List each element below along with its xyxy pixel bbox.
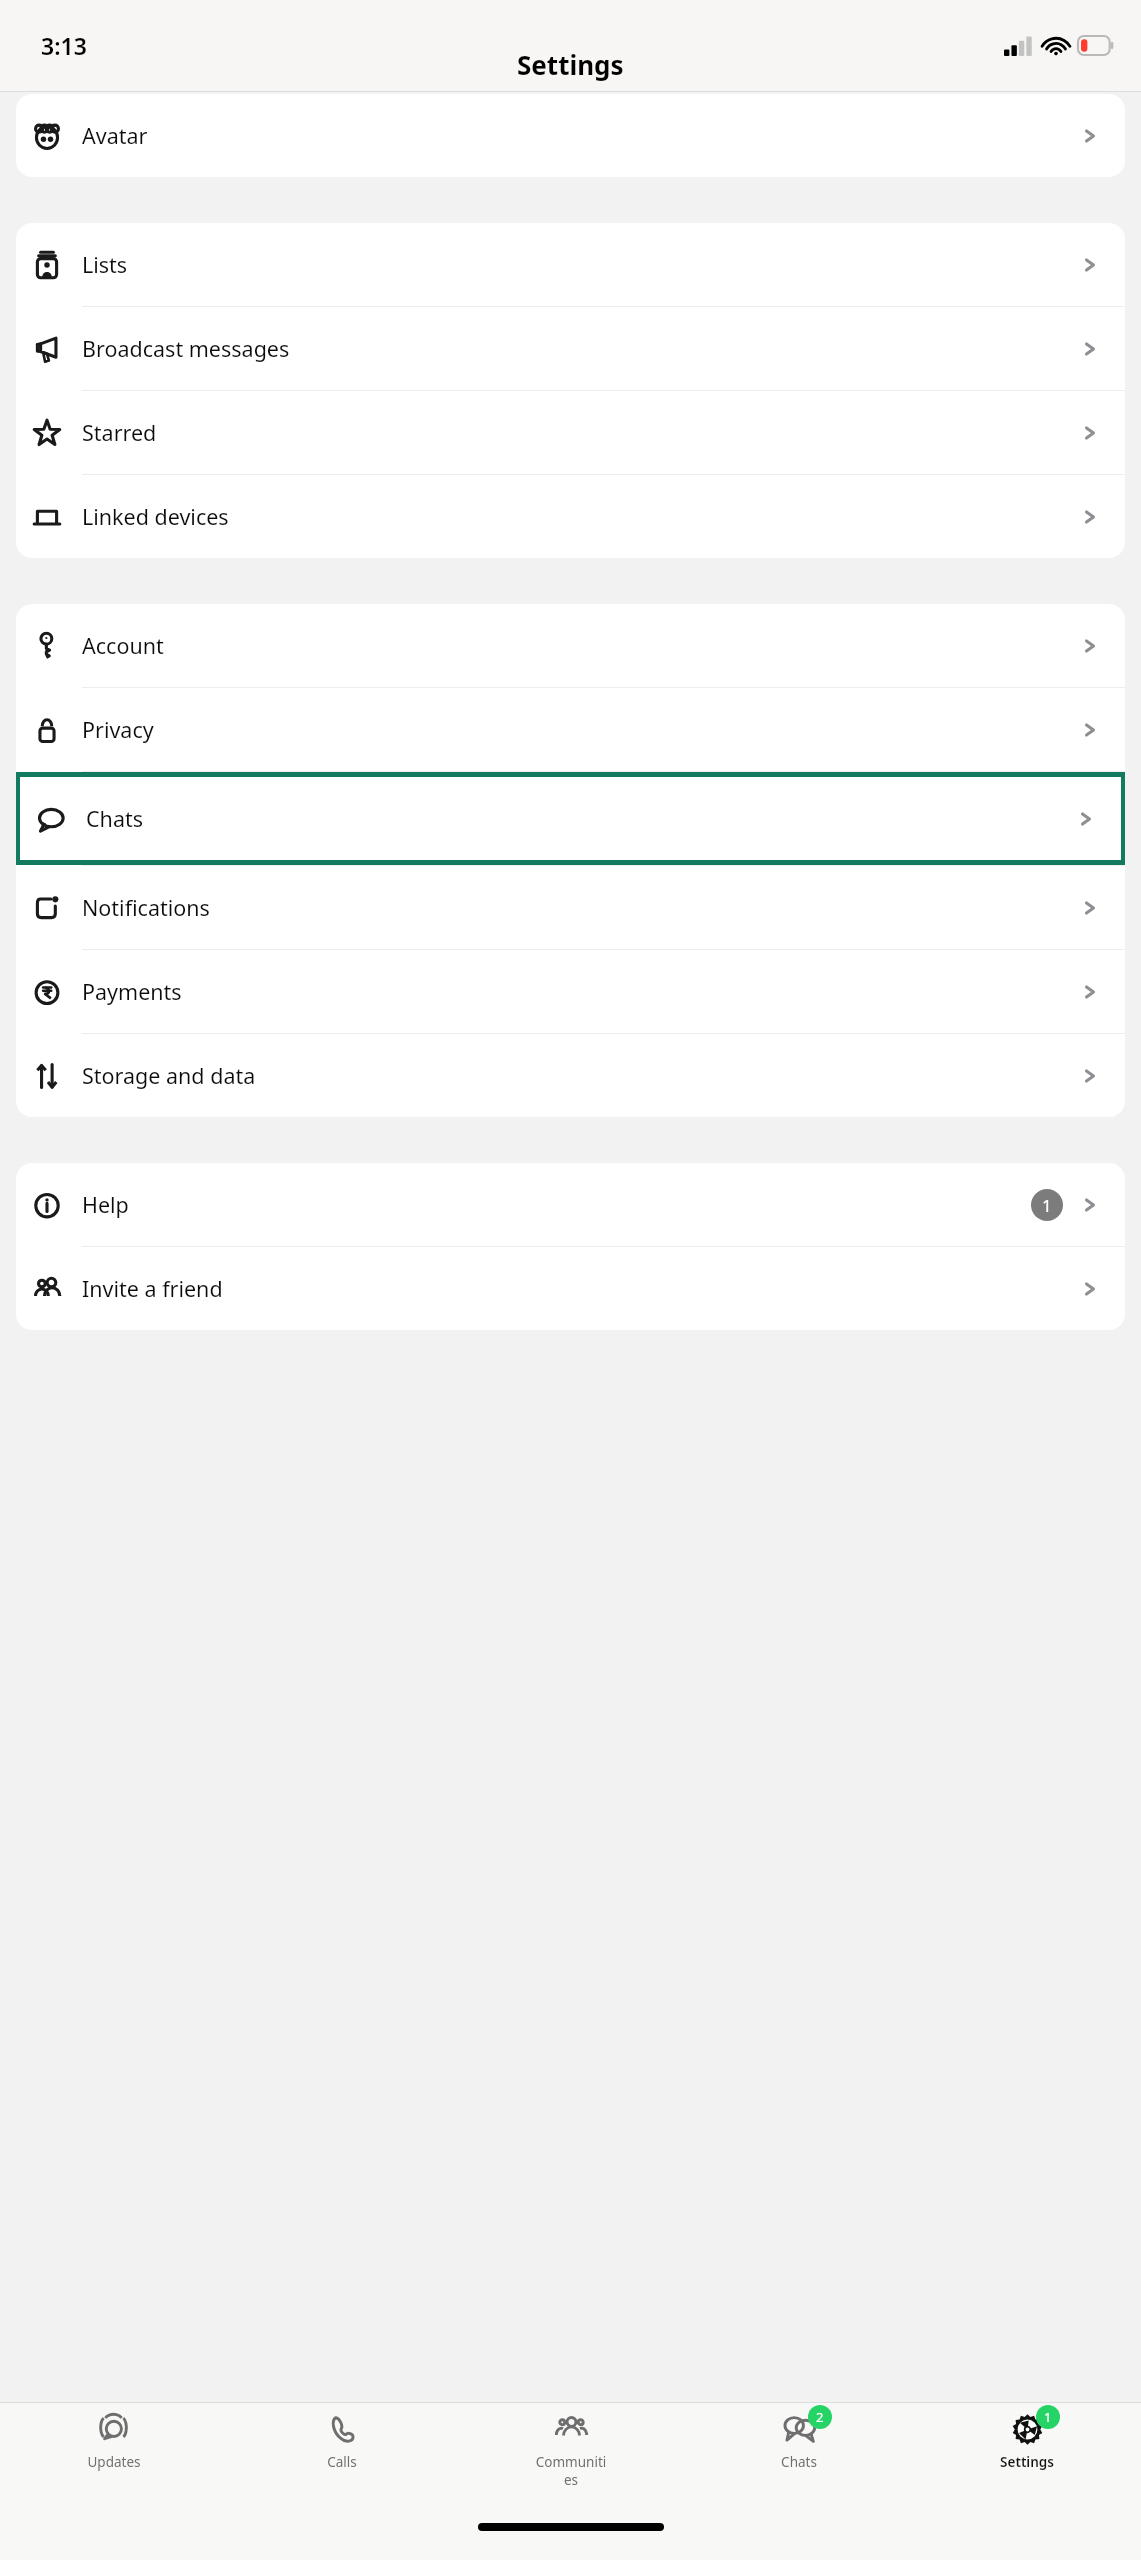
button[interactable]: Settings <box>989 2410 1065 2471</box>
staticText: Payments <box>82 977 182 1006</box>
staticText: Settings <box>517 47 624 82</box>
staticText: Account <box>82 631 164 660</box>
staticText: Avatar <box>82 121 148 150</box>
staticText: 3:13 <box>41 30 87 61</box>
staticText: Privacy <box>82 715 154 744</box>
staticText: Settings <box>1000 2453 1054 2471</box>
button[interactable]: Invite a friend <box>16 1247 1125 1330</box>
button[interactable]: Chats <box>761 2410 837 2471</box>
staticText: Broadcast messages <box>82 334 290 363</box>
staticText: Help <box>82 1190 129 1219</box>
staticText: Notifications <box>82 893 210 922</box>
button[interactable]: Updates <box>76 2410 152 2471</box>
staticText: Starred <box>82 418 157 447</box>
staticText: 2 <box>816 2408 824 2426</box>
staticText: Chats <box>86 804 143 833</box>
button[interactable]: Communities <box>533 2410 609 2489</box>
button[interactable]: Privacy <box>16 688 1125 771</box>
button[interactable]: Help <box>16 1163 1125 1246</box>
button[interactable]: Notifications <box>16 866 1125 949</box>
staticText: 1 <box>1042 1194 1052 1217</box>
button[interactable]: Account <box>16 604 1125 687</box>
staticText: 1 <box>1044 2408 1052 2426</box>
staticText: Storage and data <box>82 1061 256 1090</box>
staticText: Lists <box>82 250 128 279</box>
staticText: Invite a friend <box>82 1274 223 1303</box>
button[interactable]: Payments <box>16 950 1125 1033</box>
button[interactable]: Storage and data <box>16 1034 1125 1117</box>
button[interactable]: Calls <box>304 2410 380 2471</box>
staticText: Communities <box>533 2453 609 2489</box>
button[interactable]: Avatar <box>16 94 1125 177</box>
staticText: Updates <box>87 2453 141 2471</box>
staticText: Calls <box>327 2453 357 2471</box>
staticText: Chats <box>781 2453 817 2471</box>
button[interactable]: Broadcast messages <box>16 307 1125 390</box>
button[interactable]: Linked devices <box>16 475 1125 558</box>
button[interactable]: Starred <box>16 391 1125 474</box>
button[interactable]: Chats <box>20 777 1121 860</box>
staticText: Linked devices <box>82 502 229 531</box>
button[interactable]: Lists <box>16 223 1125 306</box>
